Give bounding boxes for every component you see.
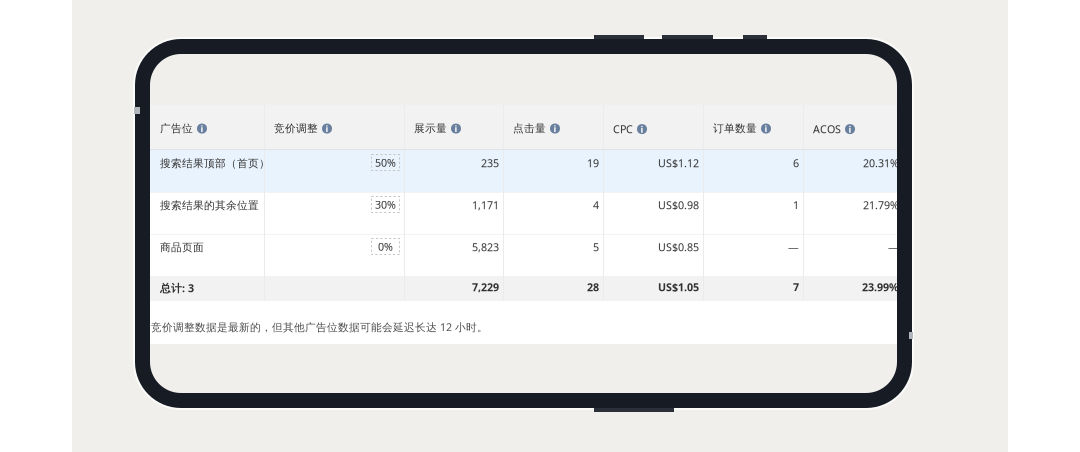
staticText: US$0.85 (658, 240, 699, 254)
button[interactable]: 点击量 (503, 105, 603, 150)
staticText: 0% (378, 239, 393, 254)
staticText: 23.99% (862, 280, 899, 294)
button[interactable]: 竞价调整 (264, 105, 404, 150)
staticText: 商品页面 (160, 241, 204, 254)
button[interactable]: CPC (603, 105, 703, 150)
staticText: 7 (793, 280, 799, 294)
staticText: — (888, 240, 899, 254)
staticText: 1 (793, 198, 799, 212)
staticText: 19 (587, 156, 599, 170)
staticText: — (788, 240, 799, 254)
staticText: 订单数量 (713, 122, 757, 135)
staticText: ACOS (813, 122, 841, 136)
staticText: US$1.12 (658, 156, 699, 170)
staticText: 20.31% (863, 156, 899, 170)
staticText: 竞价调整 (274, 122, 318, 135)
staticText: 搜索结果顶部（首页） (160, 157, 270, 170)
staticText: 235 (481, 156, 499, 170)
staticText: i (454, 122, 457, 135)
staticText: i (764, 122, 767, 135)
button[interactable]: 50% (264, 150, 404, 192)
staticText: i (553, 122, 556, 135)
staticText: 5 (593, 240, 599, 254)
staticText: i (640, 123, 643, 135)
staticText: 1,171 (472, 198, 499, 212)
staticText: 搜索结果的其余位置 (160, 199, 259, 212)
staticText: 4 (593, 198, 599, 212)
staticText: 展示量 (414, 122, 447, 135)
staticText: i (848, 123, 851, 135)
staticText: 7,229 (472, 280, 499, 294)
button[interactable]: 广告位 (150, 105, 264, 150)
staticText: 总计: 3 (160, 281, 194, 295)
staticText: i (200, 122, 203, 135)
staticText: US$1.05 (658, 280, 699, 294)
staticText: 点击量 (513, 122, 546, 135)
staticText: 5,823 (472, 240, 499, 254)
staticText: 广告位 (160, 122, 193, 135)
staticText: i (325, 122, 328, 135)
staticText: 6 (793, 156, 799, 170)
staticText: 50% (375, 155, 396, 170)
staticText: 21.79% (863, 198, 899, 212)
button[interactable]: ACOS (803, 105, 903, 150)
button[interactable]: 0% (264, 234, 404, 276)
button[interactable]: 展示量 (404, 105, 503, 150)
staticText: US$0.98 (658, 198, 699, 212)
staticText: 28 (587, 280, 599, 294)
staticText: CPC (613, 122, 633, 136)
staticText: 30% (375, 197, 396, 212)
button[interactable]: 30% (264, 192, 404, 234)
staticText: 竞价调整数据是最新的，但其他广告位数据可能会延迟长达 12 小时。 (151, 320, 488, 334)
button[interactable]: 订单数量 (703, 105, 803, 150)
